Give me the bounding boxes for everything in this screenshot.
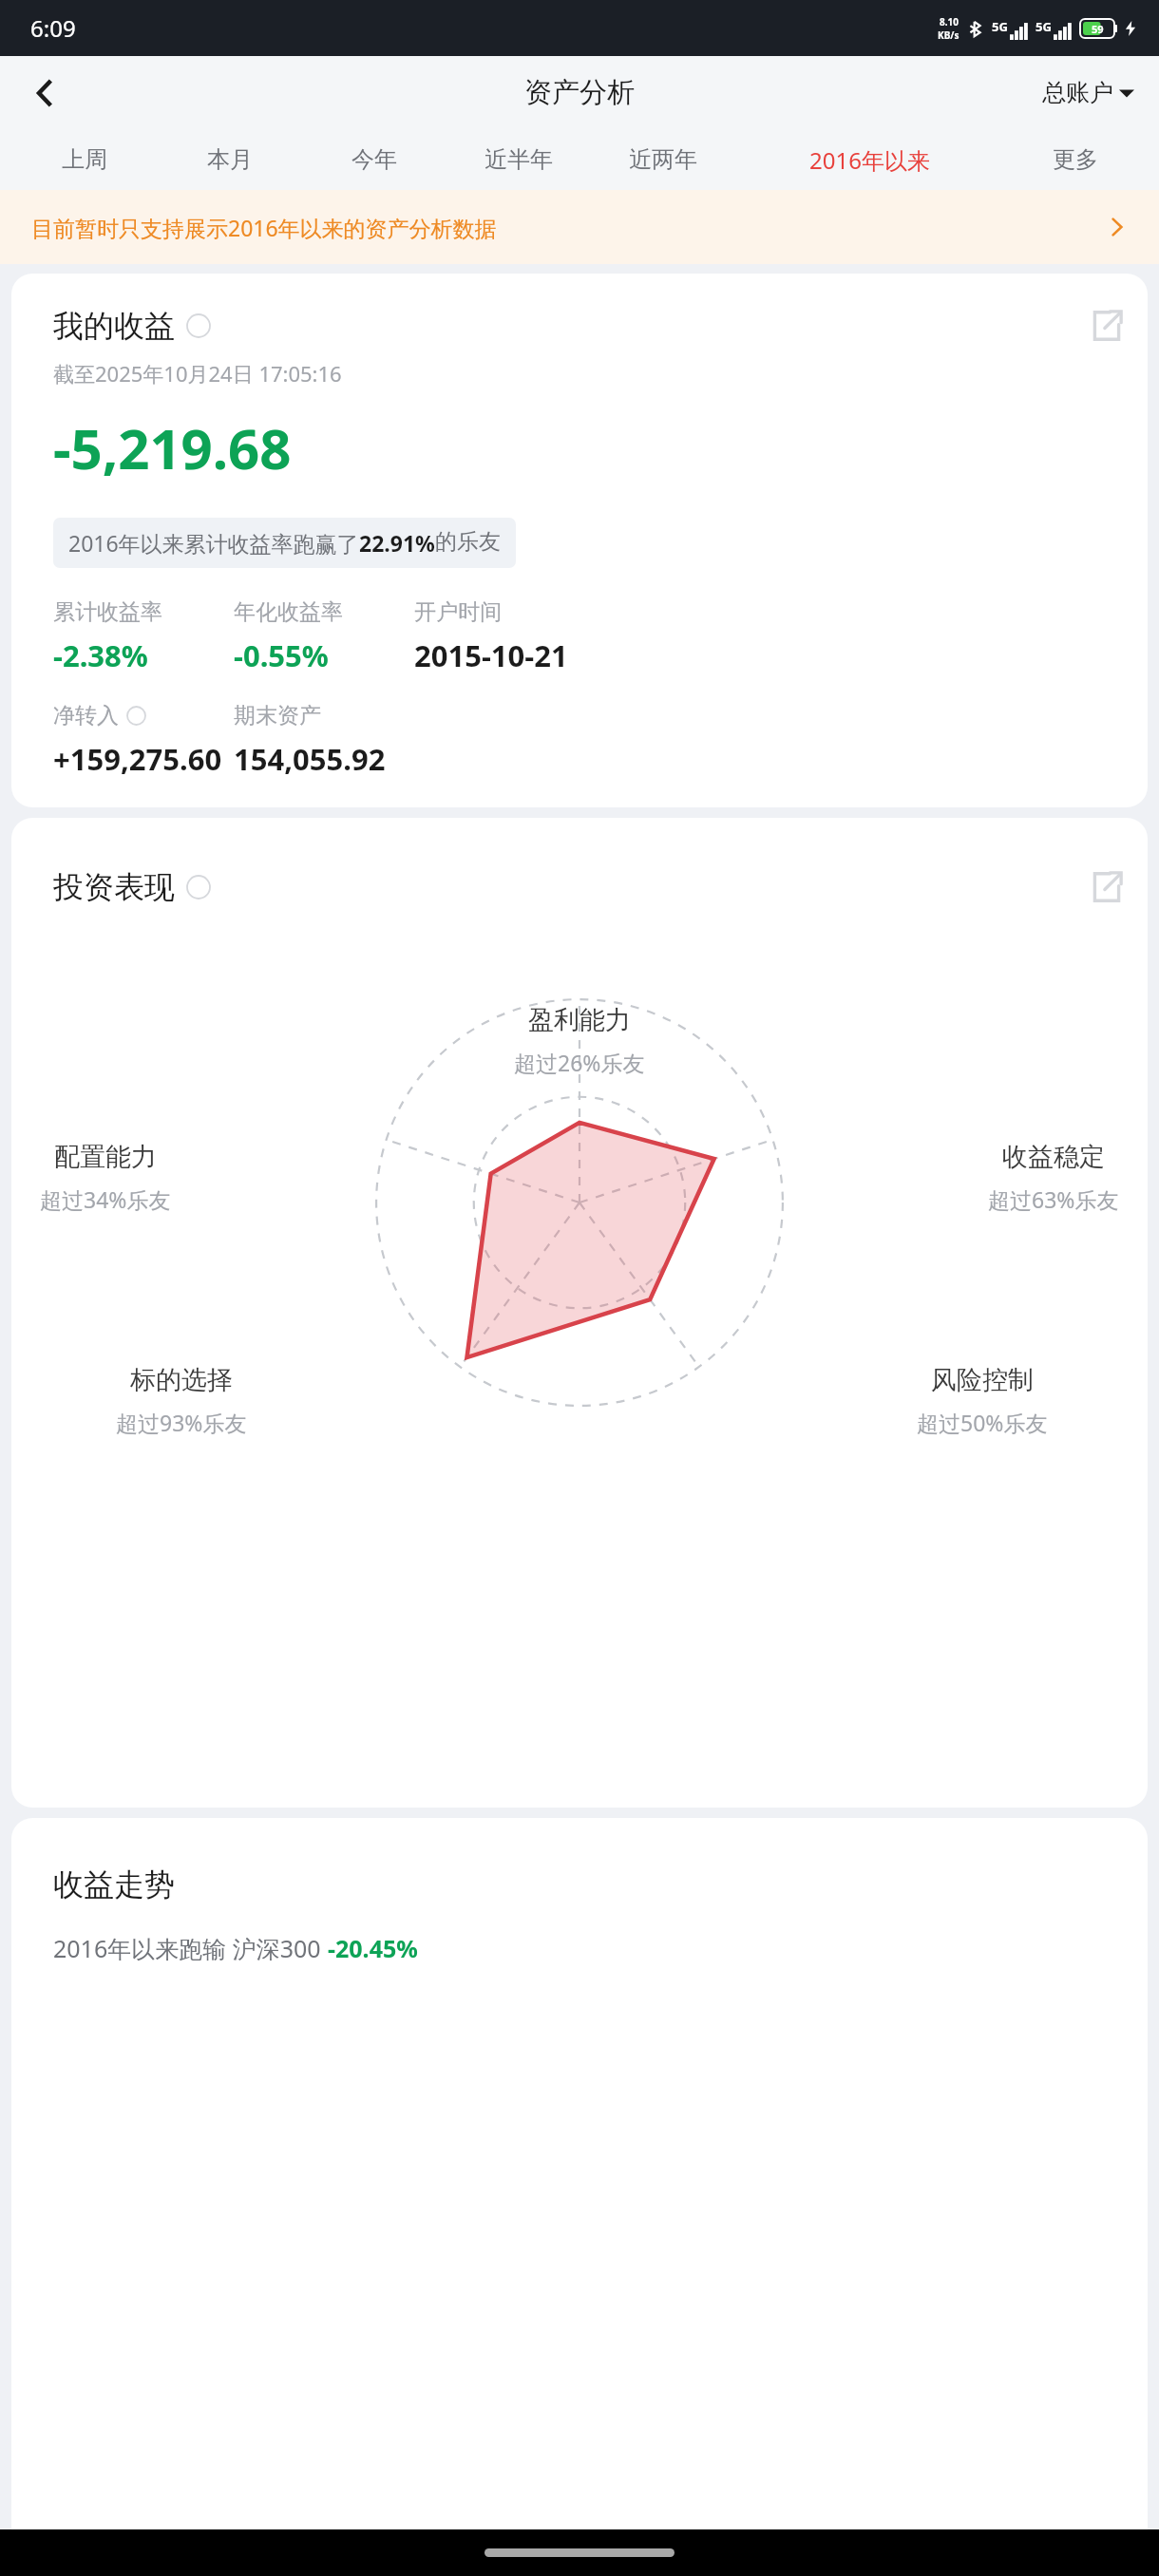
staticText: 今年 [351, 145, 397, 174]
staticText: 近半年 [484, 145, 553, 174]
staticText: +159,275.60 [53, 739, 222, 779]
staticText: 截至2025年10月24日 17:05:16 [53, 359, 342, 388]
staticText: 开户时间 [414, 598, 502, 626]
button[interactable]: 本月 [157, 129, 302, 190]
staticText: 年化收益率 [234, 598, 343, 626]
staticText: -20.45% [328, 1932, 418, 1964]
staticText: 风险控制 [931, 1364, 1034, 1396]
staticText: 累计收益率 [53, 598, 162, 626]
staticText: 超过50%乐友 [917, 1408, 1048, 1437]
staticText: 5G [992, 18, 1008, 35]
button[interactable]: Share [1087, 867, 1127, 907]
staticText: 本月 [207, 145, 253, 174]
staticText: 2016年以来 [809, 144, 930, 176]
button[interactable]: 2016年以来 [735, 129, 1003, 190]
staticText: 超过34%乐友 [40, 1184, 171, 1214]
staticText: 5G [1035, 18, 1052, 35]
staticText: 净转入 [53, 702, 119, 729]
button[interactable]: Share [1087, 306, 1127, 346]
staticText: KB/s [938, 28, 959, 42]
button[interactable]: 今年 [302, 129, 446, 190]
button[interactable]: 总账户 [1036, 70, 1140, 115]
button[interactable]: 近两年 [591, 129, 735, 190]
staticText: 目前暂时只支持展示2016年以来的资产分析数据 [31, 213, 1107, 242]
staticText: 收益走势 [53, 1866, 175, 1904]
staticText: 154,055.92 [234, 739, 386, 779]
staticText: 超过93%乐友 [116, 1408, 247, 1437]
button[interactable]: Back [19, 67, 70, 119]
staticText: 总账户 [1042, 78, 1113, 107]
staticText: 近两年 [629, 145, 697, 174]
staticText: 超过26%乐友 [514, 1048, 645, 1077]
staticText: 22.91% [359, 528, 435, 558]
staticText: 8.10 [940, 15, 959, 28]
staticText: 资产分析 [524, 75, 635, 110]
staticText: 2016年以来累计收益率跑赢了 [68, 528, 359, 558]
staticText: 59 [1092, 22, 1104, 36]
staticText: 更多 [1053, 145, 1098, 174]
button[interactable]: 近半年 [446, 129, 591, 190]
staticText: 盈利能力 [528, 1004, 631, 1036]
staticText: 配置能力 [54, 1141, 157, 1173]
staticText: -0.55% [234, 635, 329, 675]
staticText: 投资表现 [53, 868, 175, 906]
staticText: 6:09 [30, 12, 76, 44]
staticText: 2016年以来跑输 沪深300 [53, 1932, 328, 1964]
staticText: 超过63%乐友 [988, 1184, 1119, 1214]
staticText: 2015-10-21 [414, 635, 568, 675]
staticText: 上周 [62, 145, 107, 174]
button[interactable]: 目前暂时只支持展示2016年以来的资产分析数据 [0, 190, 1159, 264]
staticText: 期末资产 [234, 702, 321, 729]
button[interactable]: 上周 [11, 129, 157, 190]
staticText: 收益稳定 [1002, 1141, 1105, 1173]
staticText: -2.38% [53, 635, 148, 675]
staticText: -5,219.68 [53, 410, 292, 485]
staticText: 标的选择 [130, 1364, 233, 1396]
staticText: 我的收益 [53, 307, 175, 345]
staticText: 的乐友 [435, 528, 501, 556]
button[interactable]: 更多 [1003, 129, 1148, 190]
